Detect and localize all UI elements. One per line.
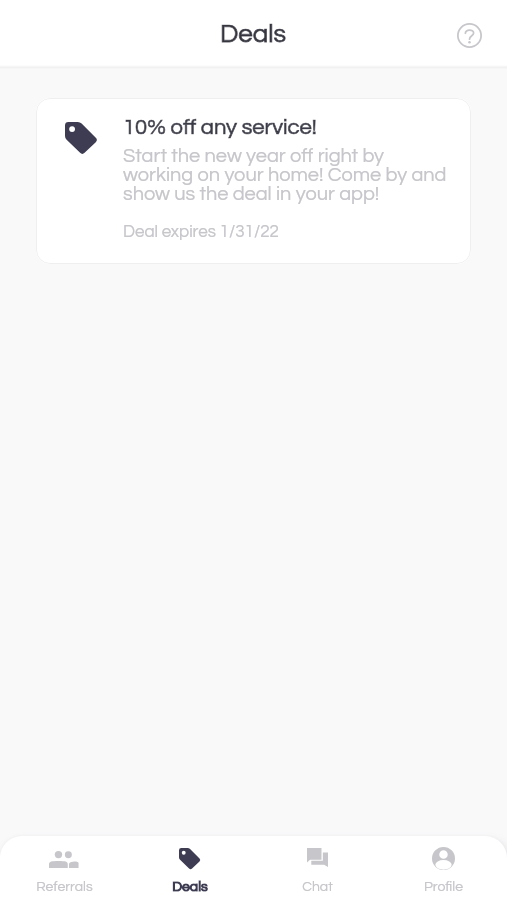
staticText: Profile: [424, 880, 463, 894]
staticText: Start the new year off right by working …: [123, 146, 453, 204]
staticText: Deals: [220, 21, 287, 48]
button[interactable]: Chat: [254, 836, 380, 900]
button[interactable]: Deals: [127, 836, 253, 900]
button[interactable]: Referrals: [1, 836, 127, 900]
staticText: Referrals: [36, 880, 93, 894]
staticText: Deals: [220, 21, 287, 48]
button[interactable]: Help: [453, 19, 485, 51]
button[interactable]: Profile: [380, 836, 506, 900]
staticText: Deal expires 1/31/22: [123, 223, 279, 241]
button[interactable]: 10% off any service!: [36, 98, 471, 264]
staticText: Deals: [172, 880, 208, 894]
staticText: Deals: [172, 880, 208, 894]
staticText: 10% off any service!: [123, 116, 317, 139]
staticText: Chat: [302, 880, 333, 894]
staticText: 10% off any service!: [123, 116, 317, 139]
